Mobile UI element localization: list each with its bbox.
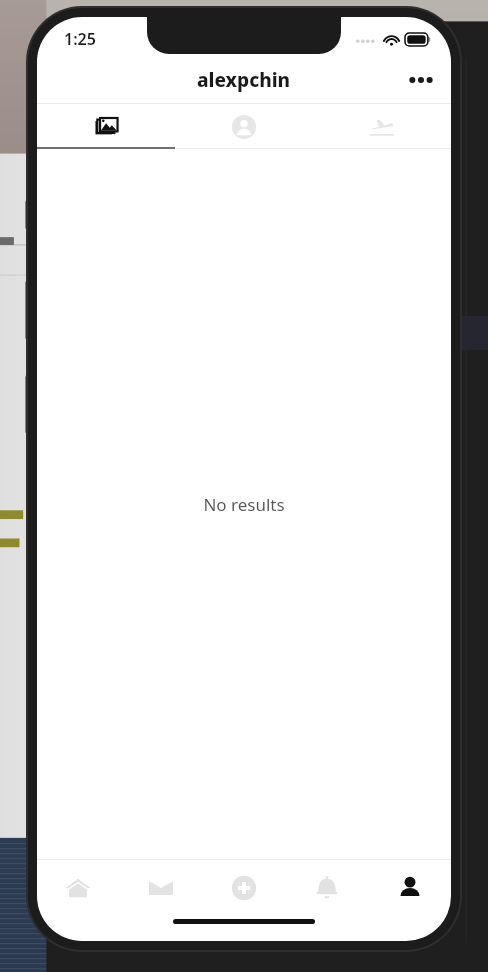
staticText: alexpchin — [197, 67, 291, 93]
button[interactable]: More options — [399, 58, 443, 102]
button[interactable]: Profile — [368, 860, 451, 915]
button[interactable]: Create — [202, 860, 285, 915]
button[interactable]: Home — [37, 860, 119, 915]
button[interactable]: People — [175, 104, 313, 149]
staticText: No results — [203, 493, 285, 516]
button[interactable]: Photos — [37, 104, 175, 149]
staticText: 1:25 — [64, 28, 96, 50]
button[interactable]: Messages — [119, 860, 202, 915]
button[interactable]: Notifications — [285, 860, 368, 915]
button[interactable]: Flights — [313, 104, 451, 149]
